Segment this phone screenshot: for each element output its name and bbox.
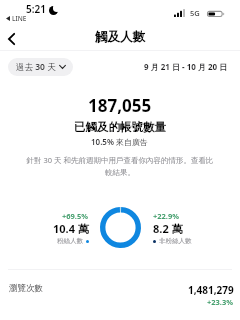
staticText: 10.4 萬 — [53, 221, 89, 236]
staticText: 187,055 — [88, 94, 152, 117]
staticText: 瀏覽次數 — [9, 283, 43, 294]
button[interactable]: 過去 30 天 — [8, 58, 73, 76]
staticText: 觸及人數 — [95, 29, 145, 45]
staticText: 5:21 — [26, 2, 46, 16]
staticText: 非粉絲人數 — [159, 237, 192, 245]
staticText: 10.5% 來自廣告 — [91, 136, 149, 147]
button[interactable]: 瀏覽次數 — [0, 269, 240, 313]
staticText: +23.3% — [207, 297, 234, 307]
staticText: 過去 30 天 — [16, 61, 56, 73]
staticText: 針對 30 天 和先前週期中用戶查看你內容的情形。查看比較結果。 — [25, 155, 215, 177]
staticText: 已觸及的帳號數量 — [74, 120, 166, 134]
button[interactable]: Back — [0, 26, 23, 50]
staticText: 9 月 21 日 - 10 月 20 日 — [144, 61, 228, 72]
staticText: 8.2 萬 — [153, 221, 183, 236]
staticText: 1,481,279 — [188, 283, 234, 297]
staticText: 5G — [190, 8, 200, 18]
staticText: 粉絲人數 — [57, 237, 83, 245]
staticText: +69.5% — [62, 211, 89, 221]
staticText: LINE — [12, 14, 27, 23]
staticText: +22.9% — [153, 211, 180, 221]
